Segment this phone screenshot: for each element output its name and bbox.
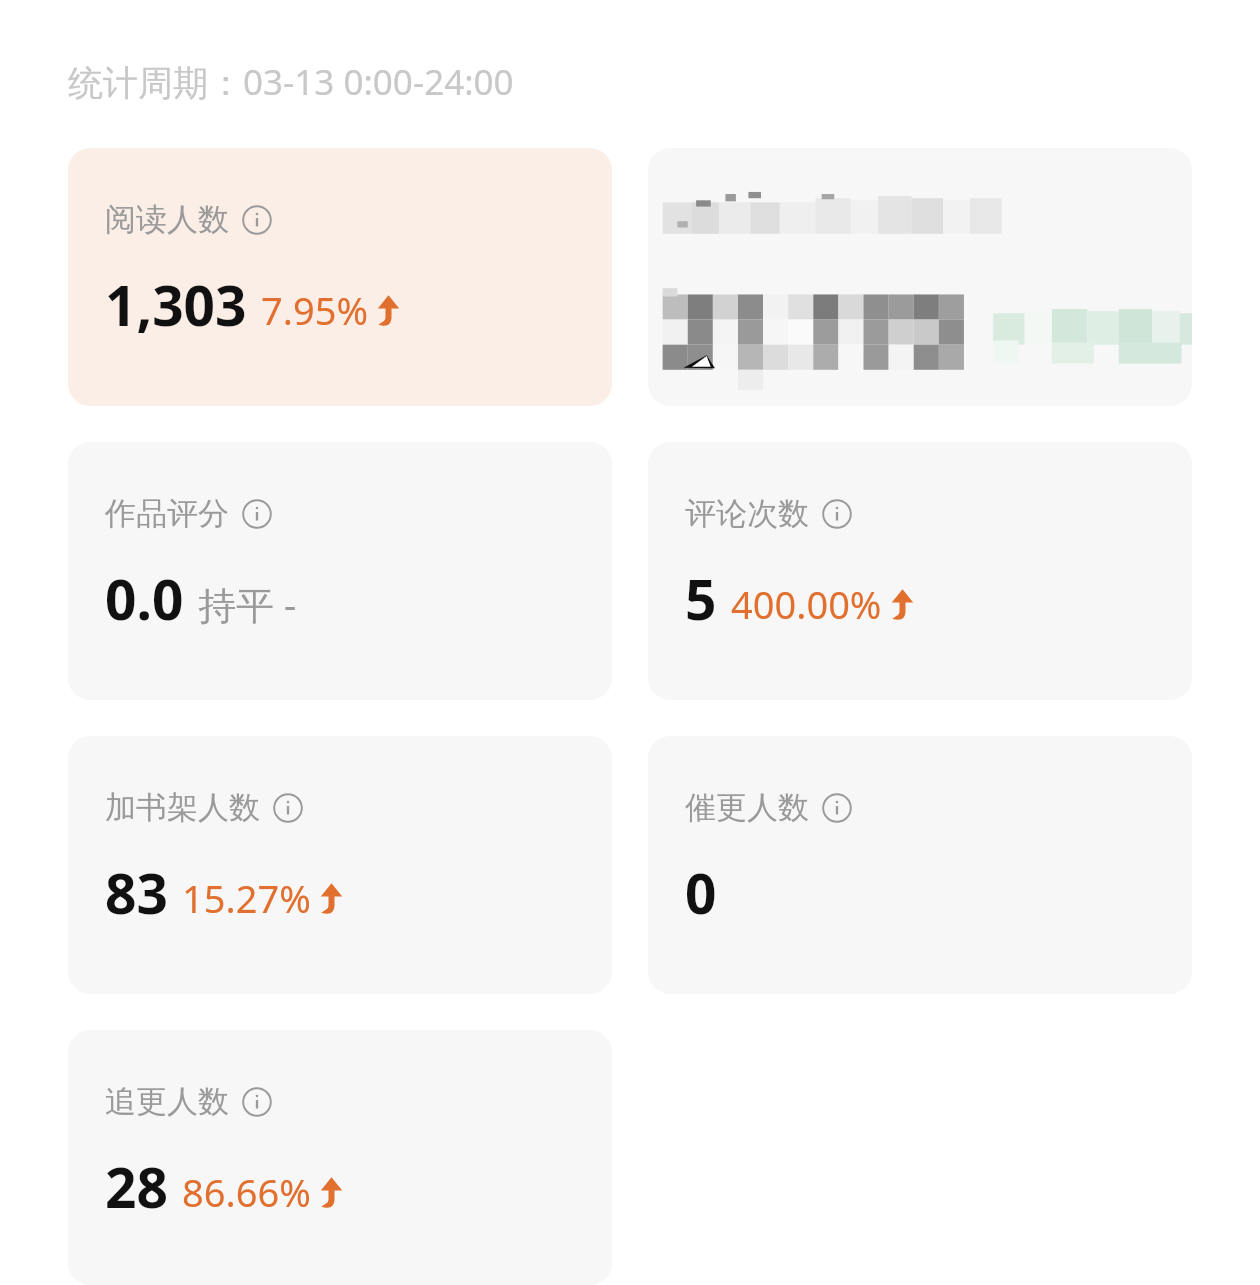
staticText: 86.66%	[182, 1166, 311, 1218]
staticText: 0	[685, 855, 717, 930]
other: More info	[242, 205, 272, 235]
staticText: 5	[685, 561, 717, 636]
staticText: 400.00%	[731, 578, 882, 630]
button[interactable]: 作品评分	[68, 442, 612, 700]
button[interactable]: 阅读人数	[68, 148, 612, 406]
other: More info	[242, 499, 272, 529]
staticText: 统计周期：03-13 0:00-24:00	[68, 58, 514, 106]
staticText: 催更人数	[685, 788, 809, 827]
staticText: 28	[105, 1149, 168, 1224]
staticText: 1,303	[105, 267, 247, 342]
staticText: 15.27%	[182, 872, 311, 924]
other: More info	[242, 1087, 272, 1117]
button[interactable]: 评论次数	[648, 442, 1192, 700]
staticText: 评论次数	[685, 494, 809, 533]
other: More info	[822, 793, 852, 823]
staticText: 持平 -	[198, 578, 297, 630]
other: More info	[822, 499, 852, 529]
staticText: 作品评分	[105, 494, 229, 533]
other: More info	[273, 793, 303, 823]
staticText: 0.0	[105, 561, 184, 636]
button[interactable]: 加书架人数	[68, 736, 612, 994]
staticText: 83	[105, 855, 168, 930]
button[interactable]: 催更人数	[648, 736, 1192, 994]
button[interactable]: 追更人数	[68, 1030, 612, 1285]
staticText: 加书架人数	[105, 788, 260, 827]
staticText: 7.95%	[261, 284, 368, 336]
button[interactable]: Hidden statistic	[648, 148, 1192, 406]
staticText: 阅读人数	[105, 200, 229, 239]
staticText: 追更人数	[105, 1082, 229, 1121]
